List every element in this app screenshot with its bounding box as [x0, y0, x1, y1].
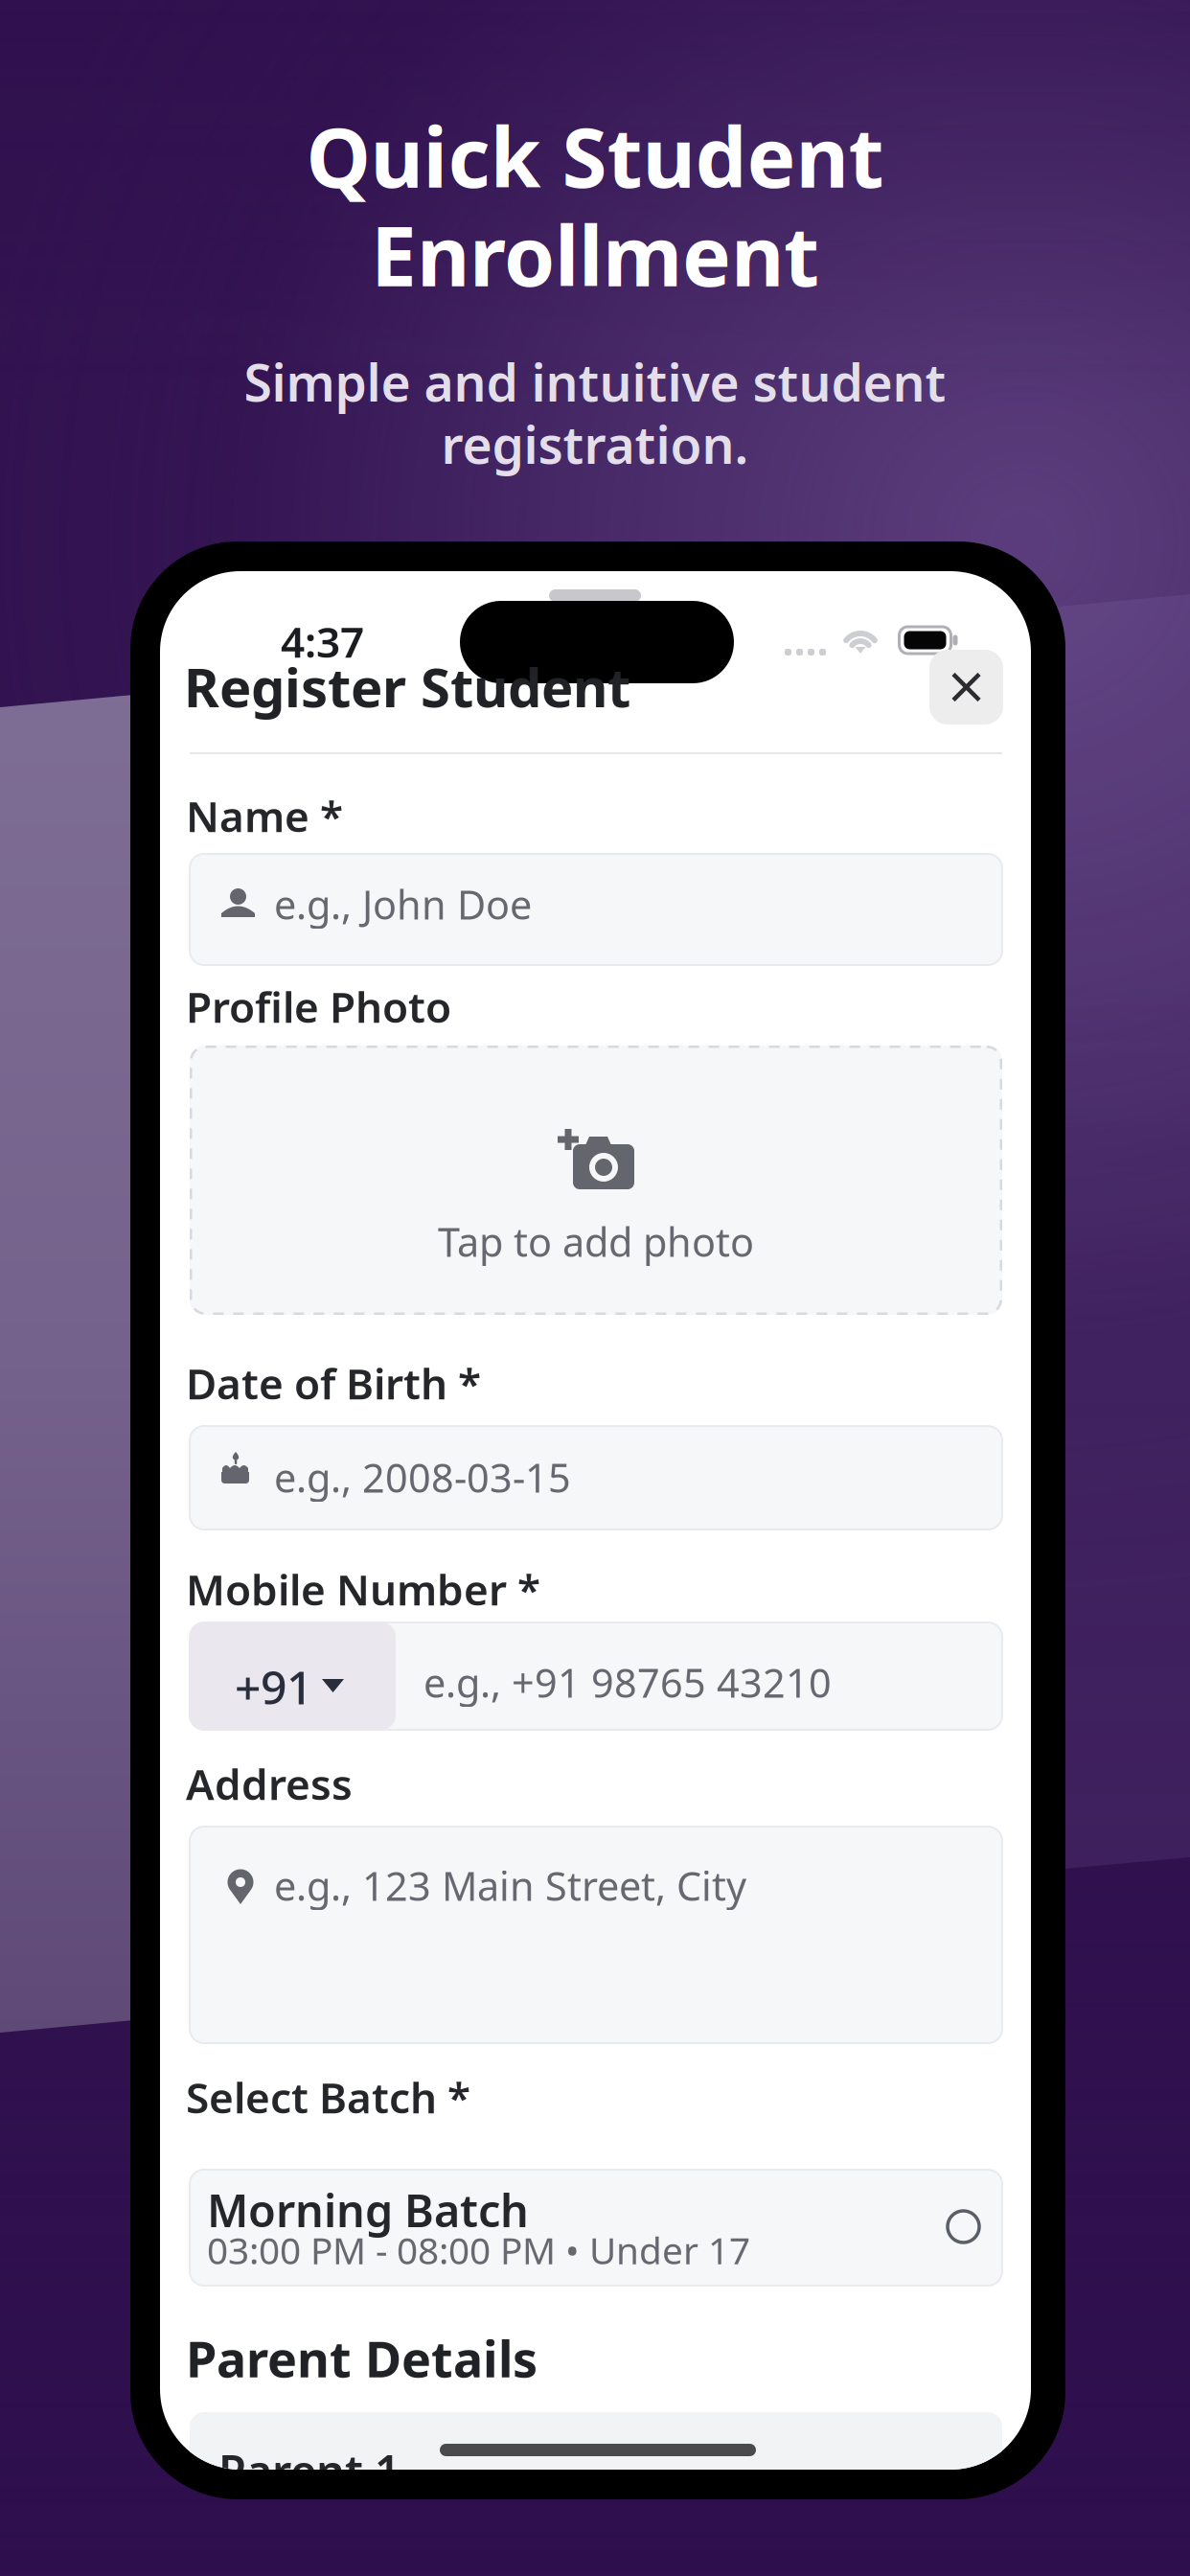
staticText: registration. — [441, 410, 749, 478]
staticText: Name * — [186, 788, 343, 844]
staticText: Parent 1 — [218, 2441, 400, 2500]
button[interactable]: Country code +91 — [190, 1622, 396, 1730]
staticText: Morning Batch — [207, 2180, 529, 2240]
staticText: Tap to add photo — [438, 1215, 754, 1268]
staticText: Parent Details — [186, 2325, 538, 2391]
staticText: Profile Photo — [186, 978, 451, 1034]
button[interactable]: Close — [929, 650, 1003, 724]
staticText: Register Student — [184, 651, 630, 722]
staticText: Address — [186, 1756, 353, 1812]
staticText: 4:37 — [281, 613, 364, 669]
staticText: Mobile Number * — [186, 1561, 540, 1617]
staticText: Enrollment — [371, 200, 819, 309]
staticText: Date of Birth * — [186, 1355, 481, 1411]
staticText: +91 — [235, 1656, 312, 1717]
staticText: Quick Student — [306, 102, 884, 210]
staticText: e.g., 2008-03-15 — [274, 1451, 571, 1504]
button[interactable]: Morning Batch — [190, 2170, 1002, 2286]
staticText: Simple and intuitive student — [244, 348, 946, 416]
staticText: 03:00 PM - 08:00 PM • Under 17 — [207, 2225, 750, 2274]
staticText: e.g., 123 Main Street, City — [274, 1859, 746, 1912]
staticText: e.g., +91 98765 43210 — [423, 1656, 832, 1709]
staticText: e.g., John Doe — [274, 878, 532, 930]
staticText: Select Batch * — [186, 2069, 470, 2125]
